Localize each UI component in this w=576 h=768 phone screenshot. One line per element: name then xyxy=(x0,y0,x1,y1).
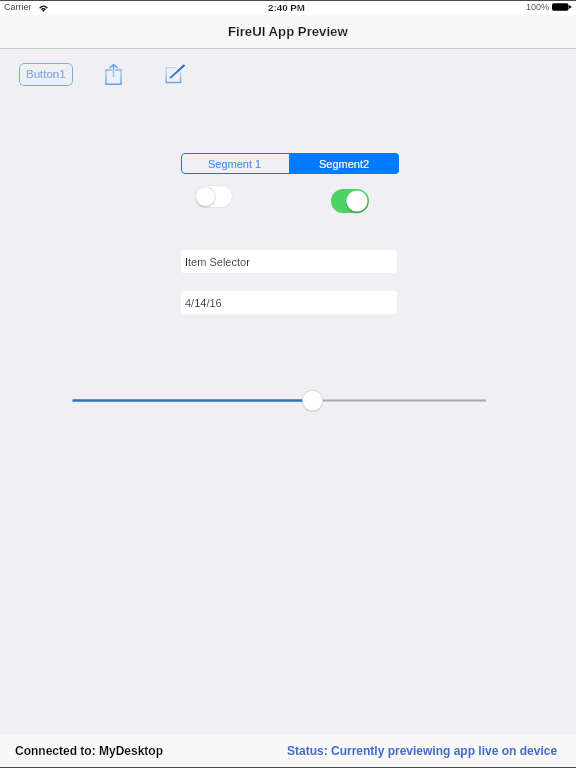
button[interactable]: Item Selector xyxy=(181,250,397,273)
button[interactable]: Compose xyxy=(159,58,191,90)
button[interactable]: Share xyxy=(97,58,129,90)
staticText: Connected to: MyDesktop xyxy=(15,744,164,757)
staticText: Item Selector xyxy=(185,256,250,268)
button[interactable]: Segment2 xyxy=(290,153,399,174)
button[interactable]: Switch off xyxy=(194,185,234,209)
button[interactable]: Slider xyxy=(0,390,576,411)
staticText: Button1 xyxy=(26,68,66,81)
staticText: 2:40 PM xyxy=(268,2,306,13)
staticText: FireUI App Preview xyxy=(228,24,348,39)
button[interactable]: Button1 xyxy=(19,63,73,86)
button[interactable]: 4/14/16 xyxy=(181,291,397,314)
staticText: Segment2 xyxy=(319,158,370,170)
staticText: Status: Currently previewing app live on… xyxy=(287,744,558,757)
staticText: 100% xyxy=(526,2,550,12)
staticText: 4/14/16 xyxy=(185,297,222,309)
button[interactable]: Switch on xyxy=(331,189,371,215)
staticText: Carrier xyxy=(4,2,32,12)
button[interactable]: Segment 1 xyxy=(181,153,289,174)
staticText: Segment 1 xyxy=(208,158,262,170)
